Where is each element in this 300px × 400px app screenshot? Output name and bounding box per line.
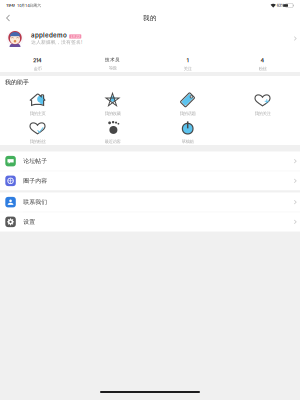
button[interactable]: 草稿箱 <box>150 118 225 146</box>
staticText: 技术员 <box>105 57 120 63</box>
button[interactable]: 圈子内容 <box>0 171 300 190</box>
staticText: 我的主页 <box>29 111 45 116</box>
staticText: 等级 <box>108 65 116 71</box>
staticText: 论坛帖子 <box>23 157 47 165</box>
staticText: 设置 <box>23 218 35 226</box>
staticText: 我的话题 <box>179 111 195 116</box>
staticText: 粉丝 <box>258 66 266 72</box>
staticText: 我的粉丝 <box>29 139 45 144</box>
staticText: 我的关注 <box>254 111 270 116</box>
button[interactable]: 我的主页 <box>0 90 75 118</box>
button[interactable]: appledemo <box>0 25 300 52</box>
button[interactable]: 设置 <box>0 212 300 231</box>
staticText: 我的收藏 <box>104 111 120 116</box>
button[interactable]: 我的关注 <box>225 90 300 118</box>
staticText: LV.23 <box>71 34 80 39</box>
staticText: 关注 <box>183 66 191 72</box>
staticText: 圈子内容 <box>23 177 47 185</box>
button[interactable]: 我的收藏 <box>75 90 150 118</box>
staticText: 10月14日周六 <box>15 3 41 8</box>
button[interactable]: 最近访客 <box>75 118 150 146</box>
staticText: appledemo <box>31 31 67 39</box>
button[interactable]: 1 <box>150 52 225 72</box>
button[interactable]: 我的粉丝 <box>0 118 75 146</box>
staticText: 214 <box>33 57 42 64</box>
staticText: 草稿箱 <box>181 139 193 144</box>
button[interactable]: 我的话题 <box>150 90 225 118</box>
staticText: 我的助手 <box>5 78 29 86</box>
button[interactable]: 4 <box>225 52 300 72</box>
staticText: 最近访客 <box>104 139 120 144</box>
staticText: 达人新媒帆，没有签名! <box>31 39 82 45</box>
staticText: 1 <box>186 57 188 64</box>
button[interactable]: 论坛帖子 <box>0 151 300 171</box>
staticText: 63% <box>276 3 285 8</box>
button[interactable]: Back <box>0 11 16 25</box>
staticText: 19:47 <box>6 3 15 8</box>
button[interactable]: 技术员 <box>75 52 150 72</box>
button[interactable]: 联系我们 <box>0 192 300 212</box>
button[interactable]: 214 <box>0 52 75 72</box>
staticText: 金币 <box>33 66 41 72</box>
staticText: 我的 <box>143 14 157 22</box>
staticText: 4 <box>260 57 264 64</box>
staticText: 联系我们 <box>23 198 47 206</box>
